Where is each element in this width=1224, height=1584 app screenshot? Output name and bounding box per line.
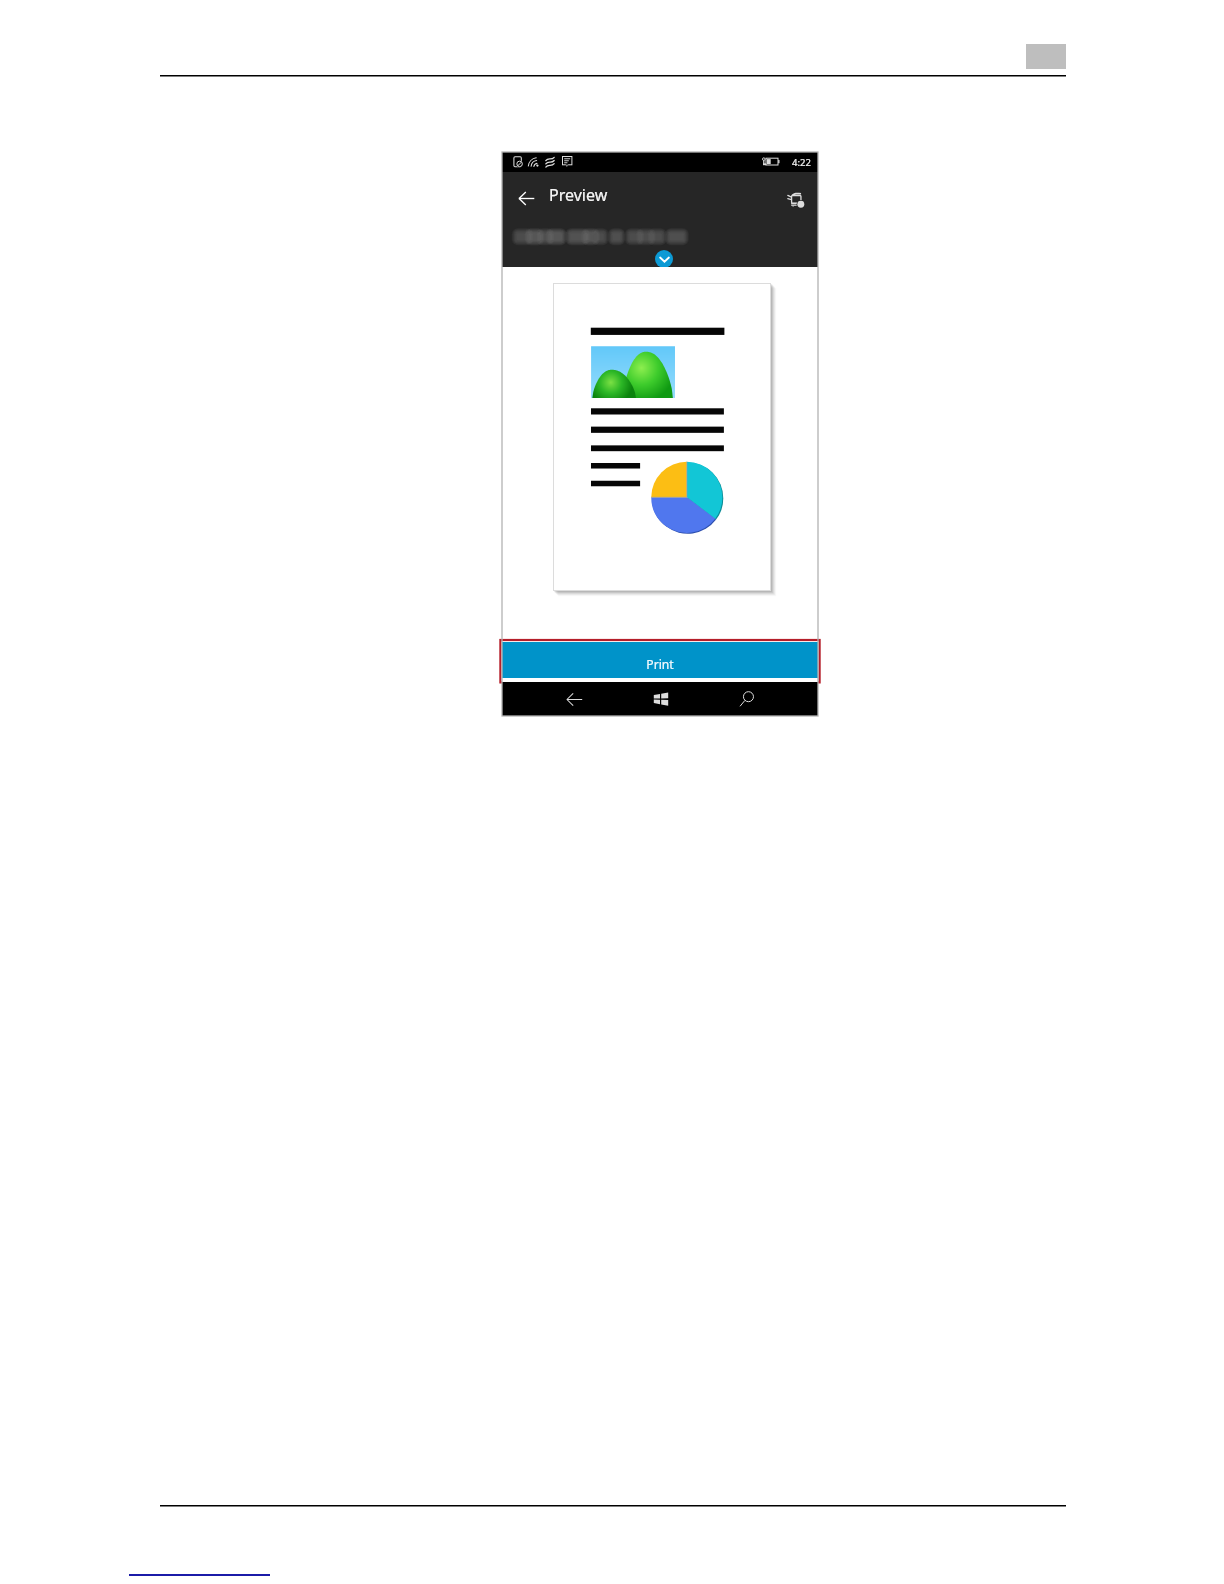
button[interactable]: Expand printer list xyxy=(655,250,673,268)
staticText: 4:22 xyxy=(792,156,811,169)
staticText: Preview xyxy=(549,184,608,206)
button[interactable]: Printer settings xyxy=(777,180,815,218)
button[interactable]: Search xyxy=(728,682,764,716)
button[interactable]: Start xyxy=(643,682,679,716)
button[interactable]: Print xyxy=(502,642,818,678)
button[interactable]: Back xyxy=(508,180,545,217)
button[interactable]: Back xyxy=(556,682,592,716)
staticText: Print xyxy=(646,656,674,673)
